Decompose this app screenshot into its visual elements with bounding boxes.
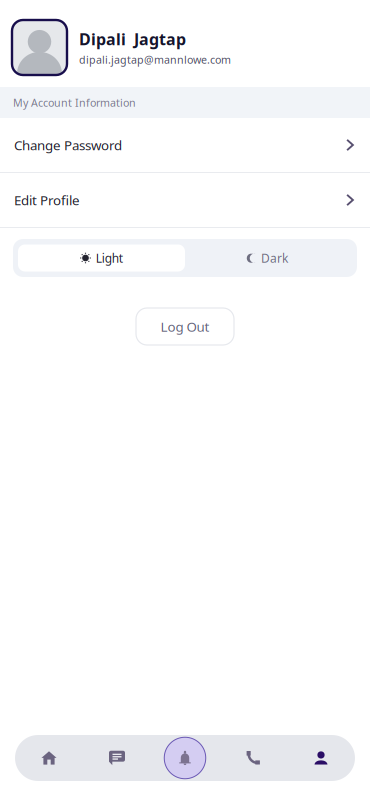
staticText: Edit Profile [14, 191, 80, 209]
button[interactable]: Notifications [151, 737, 219, 779]
button[interactable]: Light [18, 244, 185, 271]
button[interactable]: Home [15, 735, 83, 781]
button[interactable]: Messages [83, 735, 151, 781]
staticText: My Account Information [13, 95, 136, 110]
button[interactable]: Dark [185, 244, 352, 271]
staticText: Dipali Jagtap [79, 28, 186, 49]
button[interactable]: Edit Profile [0, 173, 370, 227]
staticText: Light [96, 250, 123, 266]
button[interactable]: Profile [287, 735, 355, 781]
staticText: Dark [261, 250, 288, 266]
button[interactable]: Log Out [136, 308, 234, 345]
staticText: dipali.jagtap@mannlowe.com [79, 52, 231, 67]
button[interactable]: Calls [219, 735, 287, 781]
staticText: Log Out [160, 318, 209, 335]
staticText: Change Password [14, 136, 122, 154]
button[interactable]: Change Password [0, 118, 370, 172]
